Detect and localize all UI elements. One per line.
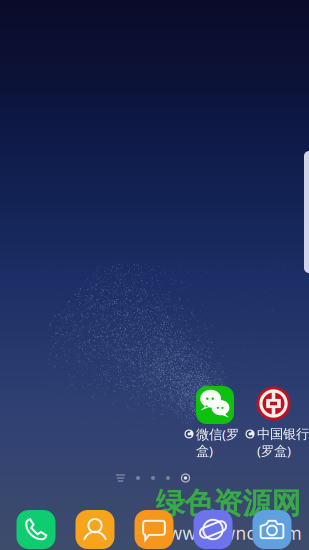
staticText: (罗盒): [257, 442, 291, 459]
staticText: 盒): [196, 442, 213, 459]
staticText: 绿色资源网: [155, 485, 300, 521]
button[interactable]: 微信(罗盒): [184, 382, 244, 462]
button[interactable]: Phone: [16, 510, 55, 549]
staticText: www.downcc.com: [154, 521, 301, 544]
staticText: 微信(罗: [196, 425, 239, 443]
staticText: 中国银行: [257, 426, 309, 442]
button[interactable]: Camera: [252, 510, 291, 549]
button[interactable]: Messages: [134, 510, 173, 549]
button[interactable]: Contacts: [75, 510, 114, 549]
button[interactable]: 中国银行(罗盒): [244, 382, 306, 462]
button[interactable]: Internet: [193, 510, 232, 549]
